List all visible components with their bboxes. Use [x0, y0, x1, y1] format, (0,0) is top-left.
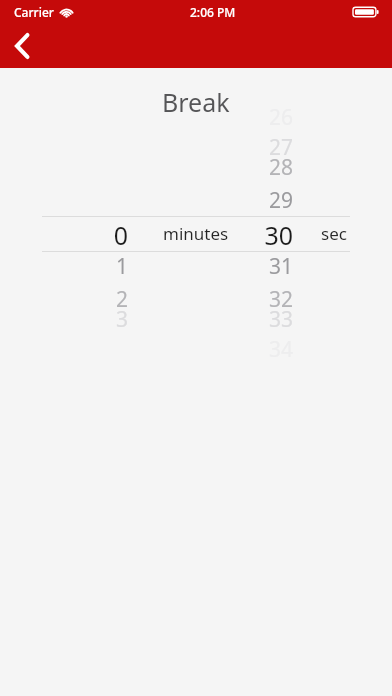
staticText: 32: [268, 285, 293, 314]
staticText: 1: [115, 252, 128, 281]
staticText: 2:06 PM: [190, 4, 236, 20]
staticText: sec: [321, 222, 347, 245]
staticText: 33: [268, 305, 293, 334]
staticText: 31: [268, 252, 293, 281]
staticText: 29: [268, 186, 293, 215]
staticText: 27: [268, 133, 293, 162]
button[interactable]: Back: [0, 24, 46, 68]
button[interactable]: Seconds picker: [205, 130, 325, 330]
staticText: 30: [264, 218, 293, 248]
staticText: 3: [115, 305, 128, 334]
staticText: 2: [115, 285, 128, 314]
staticText: minutes: [163, 222, 229, 245]
staticText: 0: [113, 218, 128, 248]
staticText: Carrier: [14, 4, 54, 20]
staticText: 28: [268, 153, 293, 182]
staticText: Break: [162, 85, 230, 119]
button[interactable]: Minutes picker: [42, 130, 162, 330]
